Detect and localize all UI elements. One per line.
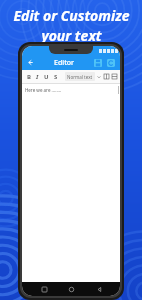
staticText: B <box>27 73 31 81</box>
button[interactable]: Back <box>93 283 105 295</box>
button[interactable]: Text style menu <box>95 73 102 80</box>
button[interactable]: Underline <box>42 72 51 81</box>
staticText: Normal text <box>67 74 93 80</box>
staticText: S <box>54 73 58 81</box>
button[interactable]: Back <box>25 57 36 68</box>
button[interactable]: Normal text <box>65 72 95 81</box>
button[interactable]: Here we are ........ <box>22 84 120 282</box>
button[interactable]: List <box>111 72 118 81</box>
staticText: I <box>36 73 39 81</box>
button[interactable]: Italic <box>33 72 42 81</box>
staticText: Here we are ........ <box>25 87 62 93</box>
button[interactable]: Align <box>102 72 111 81</box>
button[interactable]: Save <box>92 57 104 69</box>
button[interactable]: Bold <box>24 72 33 81</box>
button[interactable]: Recents <box>38 283 50 295</box>
staticText: Editor <box>54 58 75 68</box>
staticText: U <box>44 73 49 81</box>
staticText: your text <box>41 26 102 45</box>
button[interactable]: Home <box>65 283 77 295</box>
button[interactable]: Export <box>105 57 117 69</box>
staticText: Edit or Customize <box>13 6 130 25</box>
button[interactable]: Strikethrough <box>51 72 60 81</box>
